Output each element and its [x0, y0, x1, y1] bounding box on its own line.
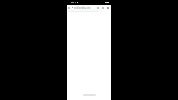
- button[interactable]: wikipedia.org: [71, 6, 96, 9]
- staticText: wikipedia.org: [74, 6, 91, 9]
